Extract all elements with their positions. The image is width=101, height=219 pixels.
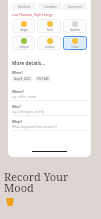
button[interactable]: Tired [37, 19, 61, 33]
staticText: Aug 8, 2020 [14, 77, 31, 81]
staticText: When? [12, 70, 23, 74]
staticText: Anxious [70, 28, 80, 32]
button[interactable]: Condition [38, 3, 62, 10]
staticText: 8:57 AM [37, 77, 49, 81]
button[interactable]: Jealous [37, 36, 61, 50]
staticText: Emotions [18, 5, 31, 9]
button[interactable]: Angry [12, 19, 35, 33]
button[interactable]: 8:57 AM [35, 76, 51, 82]
staticText: Disgust [19, 45, 29, 49]
button[interactable]: Experience [63, 3, 87, 10]
staticText: Angry [20, 28, 28, 32]
staticText: Stress [71, 45, 79, 49]
button[interactable]: App icon [6, 198, 14, 206]
staticText: Condition [44, 5, 57, 9]
staticText: What happened that caused it? [12, 125, 58, 129]
staticText: e.g. office, home [12, 95, 37, 99]
staticText: What? [12, 119, 23, 123]
staticText: Experience [68, 5, 83, 9]
button[interactable]: Disgust [12, 36, 35, 50]
staticText: Low Pleasure, High Energy [12, 13, 53, 17]
button[interactable]: Aug 8, 2020 [12, 76, 33, 82]
staticText: More details... [12, 60, 46, 67]
staticText: Who? [12, 104, 21, 108]
staticText: Where? [12, 89, 24, 93]
button[interactable]: Emotions [12, 3, 36, 10]
staticText: e.g. colleagues, family [12, 110, 45, 114]
staticText: Tired [46, 28, 53, 32]
button[interactable]: Stress [63, 36, 87, 50]
staticText: Jealous [45, 45, 54, 49]
staticText: Record Your Mood [4, 169, 69, 195]
button[interactable]: Anxious [63, 19, 87, 33]
